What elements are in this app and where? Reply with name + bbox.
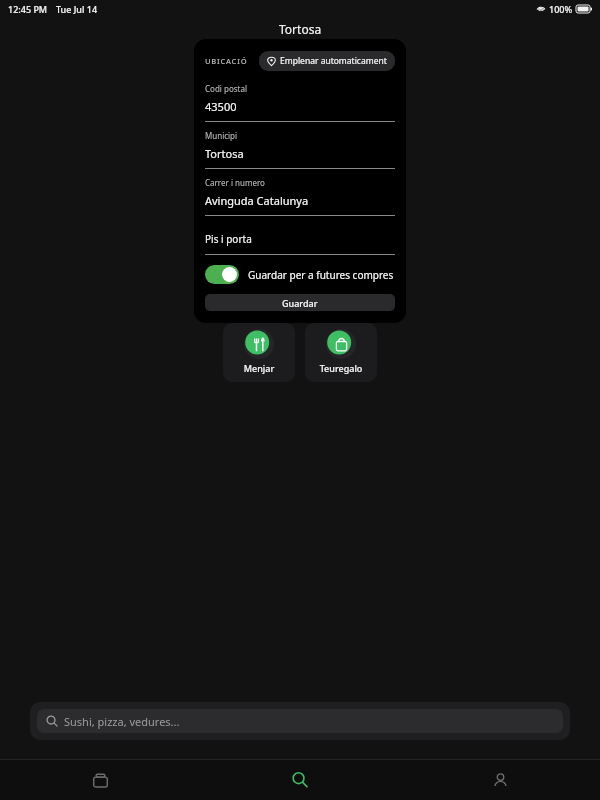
- button[interactable]: Codi postal: [205, 83, 395, 130]
- staticText: Avinguda Catalunya: [205, 193, 309, 208]
- staticText: 100%: [549, 3, 573, 15]
- staticText: Emplenar automaticament: [280, 55, 387, 67]
- staticText: Sushi, pizza, vedures...: [64, 714, 180, 729]
- button[interactable]: Emplenar automaticament: [259, 51, 395, 71]
- staticText: Codi postal: [205, 83, 247, 94]
- button[interactable]: Pis i porta: [205, 224, 395, 255]
- staticText: Tortosa: [279, 21, 322, 37]
- staticText: Menjar: [223, 362, 295, 374]
- button[interactable]: Profile: [400, 760, 600, 800]
- staticText: UBICACIÓ: [205, 56, 248, 66]
- button[interactable]: Municipi: [205, 130, 395, 177]
- button[interactable]: Orders: [0, 760, 200, 800]
- staticText: 12:45 PM: [8, 3, 48, 15]
- button[interactable]: Menjar: [223, 323, 295, 382]
- staticText: Tue Jul 14: [56, 3, 98, 15]
- button[interactable]: Guardar per a futures compres: [205, 265, 395, 284]
- staticText: Guardar: [282, 297, 318, 309]
- button[interactable]: Search: [200, 760, 400, 800]
- staticText: Municipi: [205, 130, 238, 141]
- staticText: Pis i porta: [205, 232, 252, 246]
- button[interactable]: Sushi, pizza, vedures...: [37, 709, 563, 733]
- button[interactable]: Guardar: [205, 294, 395, 311]
- staticText: 43500: [205, 99, 237, 114]
- button[interactable]: Carrer i numero: [205, 177, 395, 224]
- staticText: Carrer i numero: [205, 177, 265, 188]
- staticText: Guardar per a futures compres: [248, 268, 394, 282]
- button[interactable]: Teuregalo: [305, 323, 377, 382]
- staticText: Tortosa: [205, 146, 244, 161]
- staticText: Teuregalo: [305, 362, 377, 374]
